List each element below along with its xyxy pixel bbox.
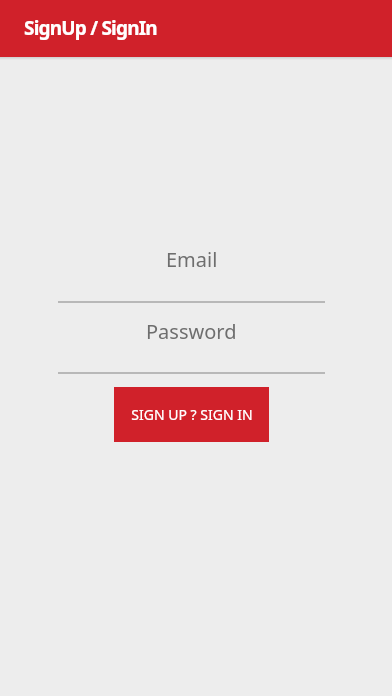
staticText: Password <box>146 318 237 345</box>
staticText: Email <box>166 246 218 273</box>
button[interactable]: Password <box>58 315 325 374</box>
button[interactable]: SIGN UP ? SIGN IN <box>114 387 269 442</box>
staticText: SignUp / SignIn <box>24 15 157 41</box>
staticText: SIGN UP ? SIGN IN <box>131 405 253 424</box>
button[interactable]: Email <box>58 243 325 303</box>
